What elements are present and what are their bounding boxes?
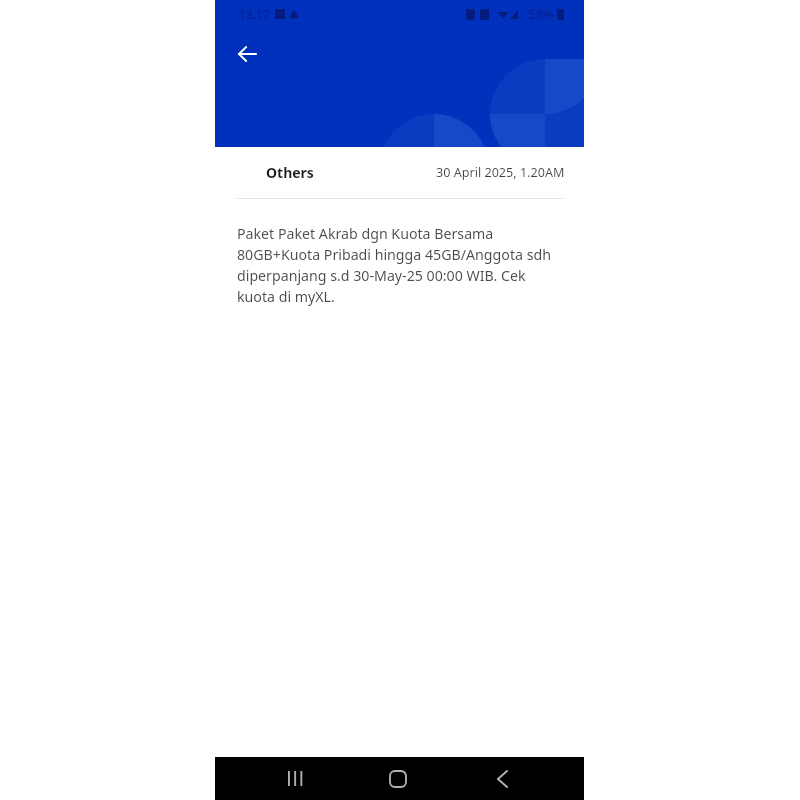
button[interactable]: Recent apps bbox=[270, 757, 320, 800]
button[interactable]: Back bbox=[477, 757, 527, 800]
button[interactable]: Back bbox=[225, 32, 269, 76]
button[interactable]: Home bbox=[373, 757, 423, 800]
staticText: Paket Paket Akrab dgn Kuota Bersama 80GB… bbox=[237, 224, 553, 307]
staticText: 30 April 2025, 1.20AM bbox=[436, 164, 565, 181]
staticText: 58% bbox=[528, 5, 554, 23]
staticText: Others bbox=[266, 163, 314, 182]
staticText: 13.17 bbox=[239, 6, 270, 22]
